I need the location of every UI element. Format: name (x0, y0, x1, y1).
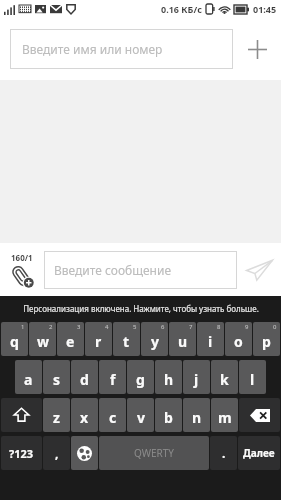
staticText: ?123 (9, 446, 34, 461)
button[interactable]: s (43, 360, 70, 394)
staticText: o (234, 332, 243, 351)
staticText: . (222, 445, 226, 461)
staticText: s (53, 370, 61, 389)
staticText: j (194, 370, 199, 389)
button[interactable]: Удалить (239, 398, 280, 432)
staticText: 9 (245, 323, 249, 331)
button[interactable]: 7 (169, 322, 196, 356)
button[interactable]: c (99, 398, 126, 432)
staticText: QWERTY (134, 446, 175, 460)
staticText: v (137, 408, 145, 427)
button[interactable]: j (183, 360, 210, 394)
button[interactable]: m (211, 398, 238, 432)
staticText: t (123, 332, 130, 351)
staticText: q (10, 332, 19, 351)
staticText: Персонализация включена. Нажмите, чтобы … (23, 303, 259, 314)
staticText: z (53, 408, 60, 427)
staticText: Далее (243, 446, 275, 460)
button[interactable]: a (15, 360, 42, 394)
staticText: 5 (133, 323, 137, 331)
staticText: u (178, 332, 188, 351)
button[interactable]: Добавить получателя (233, 25, 281, 73)
staticText: 3 (77, 323, 81, 331)
staticText: 6 (161, 323, 165, 331)
staticText: e (66, 332, 75, 351)
button[interactable]: 9 (225, 322, 252, 356)
button[interactable]: k (211, 360, 238, 394)
staticText: Введите имя или номер (22, 41, 163, 57)
staticText: w (37, 332, 49, 351)
button[interactable]: Введите имя или номер (10, 29, 233, 69)
staticText: 8 (217, 323, 221, 331)
staticText: 0 (273, 323, 277, 331)
button[interactable]: 0 (253, 322, 280, 356)
button[interactable]: f (99, 360, 126, 394)
staticText: h (164, 370, 174, 389)
staticText: x (80, 408, 89, 427)
staticText: y (151, 332, 159, 351)
staticText: d (80, 370, 89, 389)
button[interactable]: h (155, 360, 182, 394)
button[interactable]: Shift (1, 398, 42, 432)
button[interactable]: Персонализация включена. Нажмите, чтобы … (0, 296, 281, 320)
button[interactable]: QWERTY (99, 436, 209, 470)
button[interactable]: 8 (197, 322, 224, 356)
staticText: k (220, 370, 229, 389)
staticText: m (218, 408, 232, 427)
staticText: 1 (21, 323, 25, 331)
staticText: g (136, 370, 145, 389)
staticText: 01:45 (253, 3, 277, 15)
staticText: , (55, 445, 59, 461)
staticText: 2 (49, 323, 53, 331)
button[interactable]: z (43, 398, 70, 432)
staticText: r (95, 332, 102, 351)
staticText: c (109, 408, 117, 427)
button[interactable]: Сменить язык (71, 436, 98, 470)
button[interactable]: Далее (238, 436, 280, 470)
staticText: 4 (105, 323, 109, 331)
staticText: p (262, 332, 271, 351)
button[interactable]: ?123 (1, 436, 42, 470)
button[interactable]: l (239, 360, 266, 394)
button[interactable]: . (210, 436, 237, 470)
button[interactable]: 5 (113, 322, 140, 356)
staticText: 7 (189, 323, 193, 331)
button[interactable]: v (127, 398, 154, 432)
button[interactable]: b (155, 398, 182, 432)
button[interactable]: Отправить (237, 247, 281, 293)
staticText: f (110, 370, 116, 389)
button[interactable]: 1 (1, 322, 28, 356)
staticText: n (192, 408, 202, 427)
button[interactable]: g (127, 360, 154, 394)
staticText: l (250, 370, 255, 389)
button[interactable]: 6 (141, 322, 168, 356)
button[interactable]: Введите сообщение (44, 251, 237, 289)
staticText: i (208, 332, 213, 351)
button[interactable]: 2 (29, 322, 56, 356)
staticText: Введите сообщение (54, 262, 172, 278)
button[interactable]: 4 (85, 322, 112, 356)
staticText: 0.16 КБ/c (161, 3, 202, 15)
staticText: b (164, 408, 173, 427)
button[interactable]: Прикрепить файл (0, 252, 44, 288)
button[interactable]: , (43, 436, 70, 470)
staticText: a (24, 370, 33, 389)
button[interactable]: x (71, 398, 98, 432)
button[interactable]: d (71, 360, 98, 394)
button[interactable]: 3 (57, 322, 84, 356)
button[interactable]: n (183, 398, 210, 432)
staticText: 160/1 (11, 252, 33, 263)
